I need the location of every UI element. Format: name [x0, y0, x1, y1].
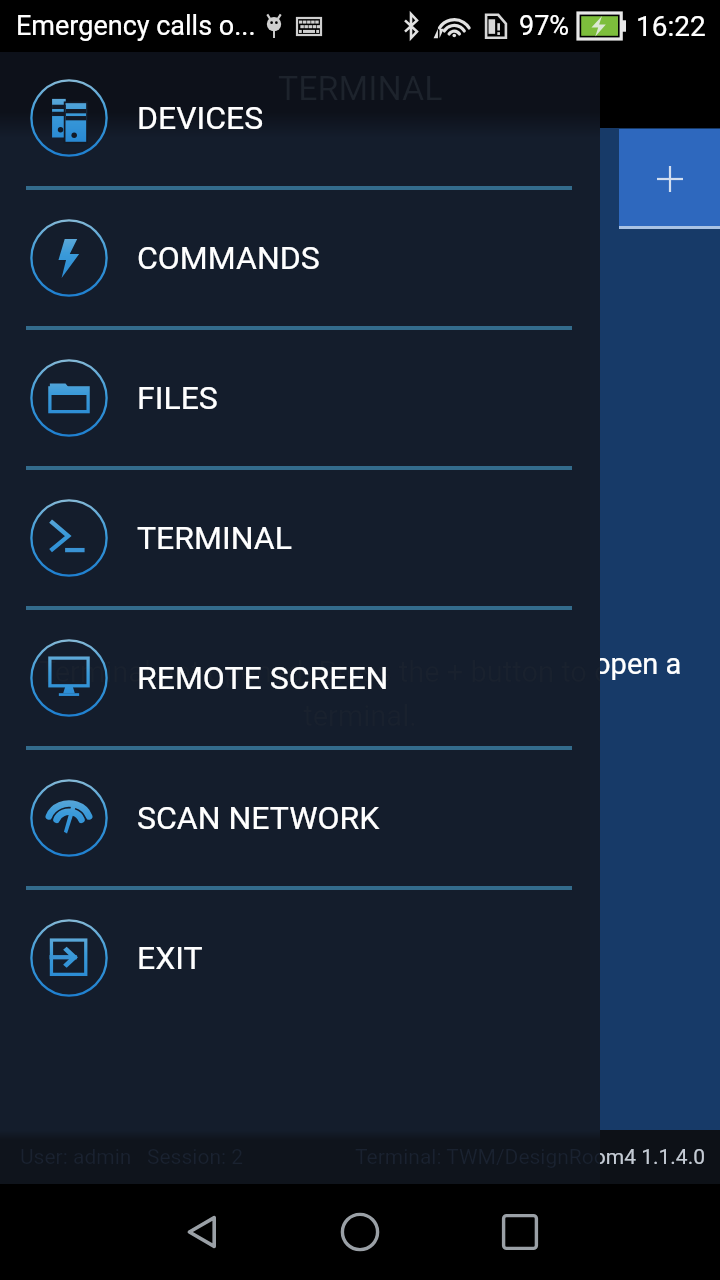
staticText: Terminal not opened. Press the + button … [14, 647, 706, 725]
button[interactable]: COMMANDS [0, 190, 600, 326]
staticText: FILES [137, 379, 218, 417]
button[interactable]: REMOTE SCREEN [0, 610, 600, 746]
staticText: User: admin Session: 2 [20, 1145, 244, 1170]
button[interactable]: EXIT [0, 890, 600, 1026]
staticText: TERMINAL [278, 68, 443, 108]
staticText: TERMINAL [278, 70, 443, 110]
button[interactable]: FILES [0, 330, 600, 466]
staticText: TERMINAL [137, 519, 292, 557]
staticText: 97% [519, 10, 570, 42]
staticText: Terminal: TWM/DesignRoom4 1.1.4.0 [355, 1145, 600, 1170]
staticText: DEVICES [137, 99, 264, 137]
button[interactable]: New terminal [619, 129, 720, 229]
button[interactable]: TERMINAL [0, 470, 600, 606]
button[interactable]: Home [312, 1184, 408, 1280]
staticText: Emergency calls o... [16, 10, 256, 42]
staticText: User: admin Session: 2 [20, 1145, 244, 1170]
button[interactable]: Back [155, 1184, 251, 1280]
button[interactable]: SCAN NETWORK [0, 750, 600, 886]
staticText: Terminal: TWM/DesignRoom4 1.1.4.0 [355, 1145, 706, 1170]
staticText: COMMANDS [137, 239, 320, 277]
staticText: REMOTE SCREEN [137, 659, 389, 697]
button[interactable]: DEVICES [0, 52, 600, 186]
button[interactable]: Recent apps [472, 1184, 568, 1280]
staticText: SCAN NETWORK [137, 799, 380, 837]
staticText: EXIT [137, 939, 203, 977]
staticText: 16:22 [636, 10, 706, 43]
staticText: Terminal not opened. Press the + button … [14, 655, 600, 733]
